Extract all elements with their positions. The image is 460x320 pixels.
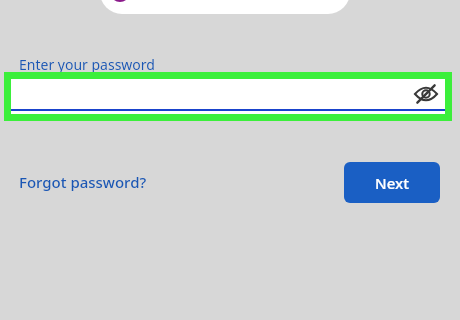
staticText: Next: [375, 173, 409, 193]
staticText: Forgot password?: [19, 172, 147, 192]
staticText: Enter your password: [19, 55, 155, 74]
button[interactable]: Show password: [412, 80, 440, 108]
button[interactable]: Next: [344, 162, 440, 203]
button[interactable]: Show password: [11, 79, 445, 114]
button[interactable]: Forgot password?: [14, 168, 152, 196]
button[interactable]: name@example.com: [100, 0, 350, 14]
